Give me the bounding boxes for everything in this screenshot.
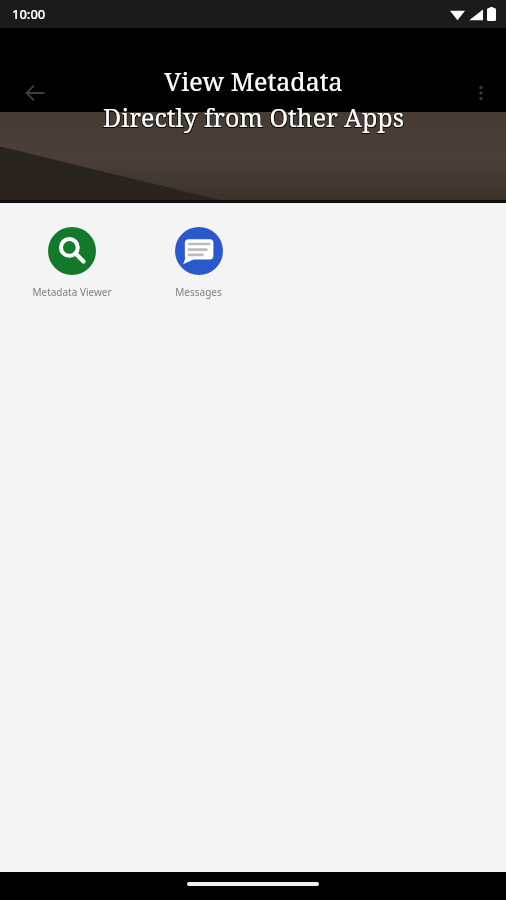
staticText: Directly from Other Apps: [104, 101, 405, 135]
button[interactable]: Messages: [135, 223, 262, 303]
button[interactable]: Metadata Viewer: [8, 223, 135, 303]
staticText: Directly from Other Apps: [103, 100, 404, 134]
staticText: View Metadata: [165, 65, 344, 99]
staticText: 10:00: [12, 5, 46, 23]
staticText: Messages: [175, 285, 222, 299]
staticText: Metadata Viewer: [32, 285, 112, 299]
button[interactable]: More options: [460, 72, 502, 114]
button[interactable]: Back: [14, 72, 56, 114]
staticText: Directly from Other Apps: [102, 101, 403, 135]
button[interactable]: Home: [187, 882, 319, 886]
staticText: View Metadata: [163, 65, 342, 99]
staticText: View Metadata: [164, 64, 343, 98]
